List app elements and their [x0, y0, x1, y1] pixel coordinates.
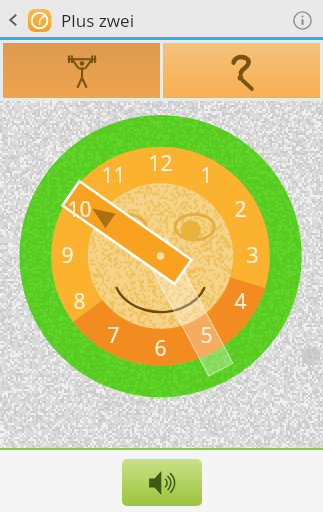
button[interactable]: Exercise: [3, 43, 160, 98]
staticText: 3: [246, 241, 259, 270]
staticText: 8: [73, 287, 86, 316]
staticText: 6: [154, 334, 167, 363]
staticText: 7: [107, 321, 120, 350]
staticText: 11: [101, 161, 126, 190]
button[interactable]: Help: [163, 43, 320, 98]
staticText: 1: [200, 161, 213, 190]
staticText: 5: [200, 321, 213, 350]
staticText: Plus zwei: [61, 9, 135, 32]
staticText: 2: [234, 195, 247, 224]
button[interactable]: App icon: [24, 5, 54, 35]
button[interactable]: Info: [287, 5, 317, 35]
staticText: 12: [148, 149, 173, 178]
staticText: 10: [67, 195, 92, 224]
button[interactable]: Back: [2, 9, 24, 31]
button[interactable]: Play sound: [122, 459, 202, 506]
staticText: 4: [234, 287, 247, 316]
staticText: 9: [61, 241, 74, 270]
